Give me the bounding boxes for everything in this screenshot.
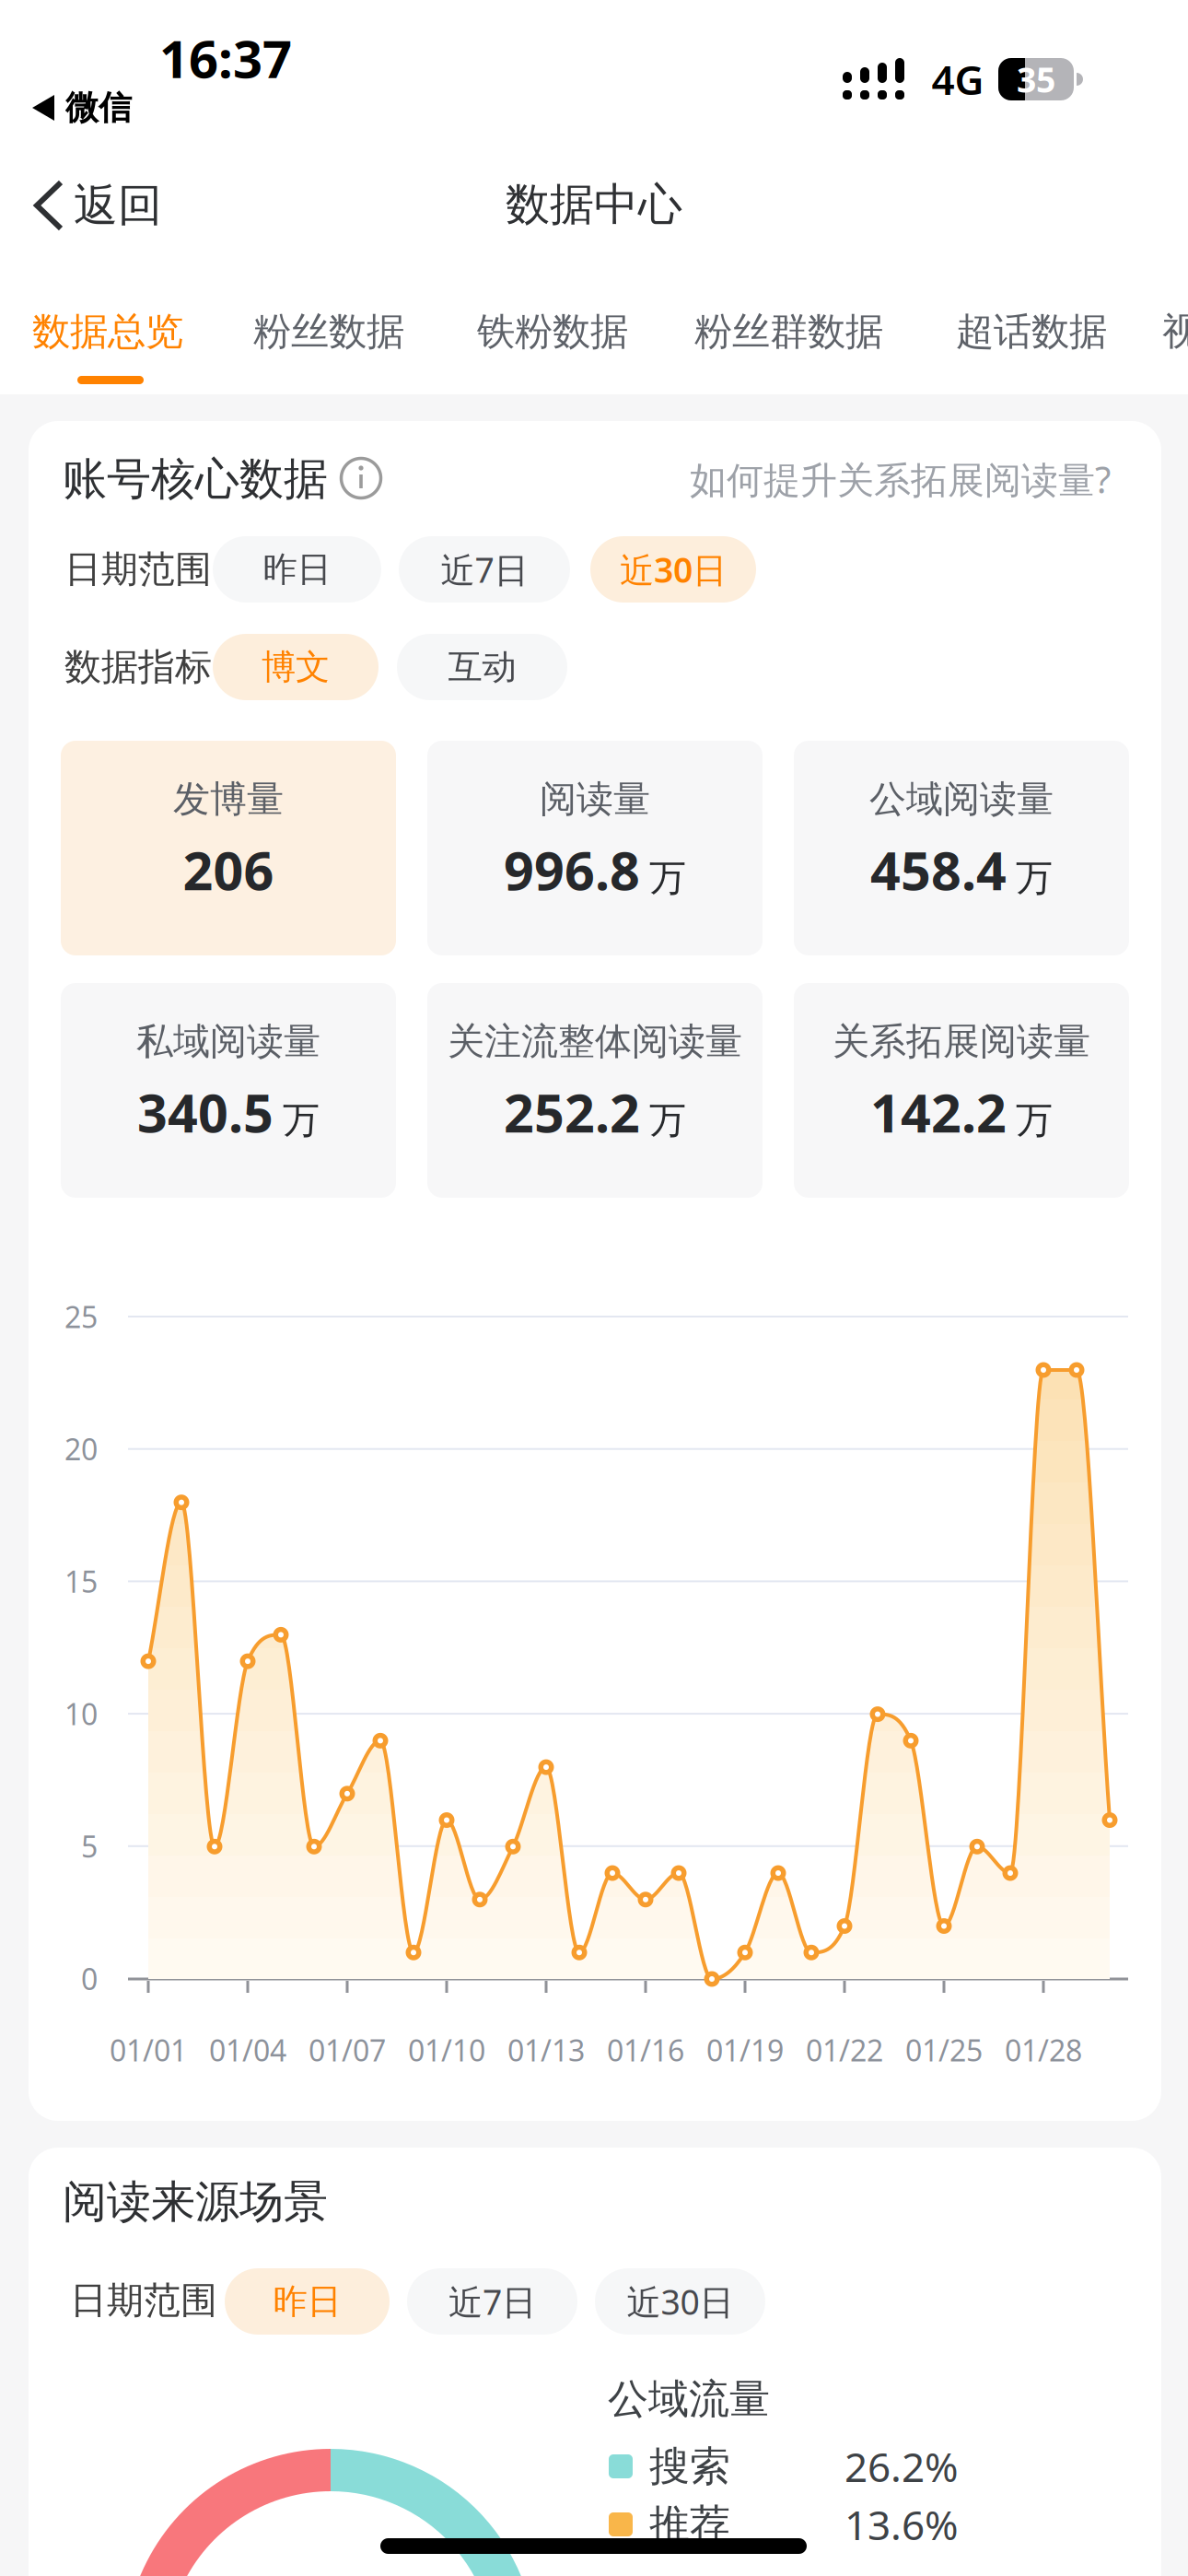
staticText: 01/10	[408, 2030, 485, 2070]
staticText: 视频数据	[1162, 308, 1188, 355]
staticText: 万	[1016, 1098, 1053, 1143]
button[interactable]: 昨日	[0, 0, 169, 66]
staticText: 10	[64, 1694, 98, 1733]
button[interactable]: 关注流整体阅读量	[0, 0, 335, 215]
staticText: 万	[1016, 855, 1053, 901]
staticText: 如何提升关系拓展阅读量?	[690, 455, 1111, 503]
button[interactable]: 私域阅读量	[0, 0, 335, 215]
staticText: 阅读量	[540, 777, 650, 822]
staticText: 252.2	[504, 1077, 640, 1147]
staticText: 发博量	[173, 777, 284, 822]
staticText: 日期范围	[70, 2278, 217, 2323]
button[interactable]: 昨日	[0, 0, 165, 66]
staticText: 数据指标	[64, 644, 212, 690]
staticText: 铁粉数据	[477, 308, 628, 355]
staticText: 公域流量	[608, 2374, 770, 2424]
staticText: 340.5	[137, 1077, 274, 1147]
staticText: 4G	[932, 52, 984, 106]
staticText: 数据总览	[32, 308, 183, 355]
staticText: 近30日	[627, 2279, 734, 2324]
button[interactable]: 视频数据	[0, 0, 164, 59]
staticText: 日期范围	[64, 547, 212, 592]
staticText: 206	[183, 835, 274, 905]
staticText: 昨日	[263, 548, 331, 591]
button[interactable]: 博文	[0, 0, 166, 66]
staticText: 推荐	[649, 2500, 730, 2549]
staticText: 万	[649, 1098, 686, 1143]
staticText: 20	[64, 1429, 98, 1469]
staticText: 142.2	[870, 1077, 1007, 1147]
staticText: 26.2%	[844, 2439, 959, 2493]
button[interactable]: 粉丝数据	[0, 0, 164, 59]
staticText: 返回	[74, 178, 162, 233]
staticText: 01/01	[110, 2030, 187, 2070]
staticText: 万	[283, 1098, 320, 1143]
staticText: 昨日	[273, 2280, 341, 2323]
staticText: 01/16	[607, 2030, 684, 2070]
staticText: 粉丝群数据	[694, 308, 883, 355]
staticText: 25	[64, 1297, 98, 1336]
staticText: 近30日	[620, 547, 727, 592]
staticText: 阅读来源场景	[63, 2175, 328, 2229]
staticText: 互动	[448, 646, 516, 688]
staticText: 01/07	[309, 2030, 386, 2070]
button[interactable]: 关系拓展阅读量	[0, 0, 335, 215]
staticText: 超话数据	[956, 308, 1107, 355]
button[interactable]: 铁粉数据	[0, 0, 164, 59]
staticText: 账号核心数据	[63, 452, 328, 506]
button[interactable]: 返回	[0, 0, 193, 57]
button[interactable]: 近30日	[0, 0, 166, 66]
staticText: 15	[64, 1562, 98, 1601]
staticText: 万	[649, 855, 686, 901]
button[interactable]: 近7日	[0, 0, 171, 66]
button[interactable]: 发博量	[0, 0, 335, 215]
staticText: 搜索	[649, 2441, 730, 2491]
staticText: 01/25	[905, 2030, 983, 2070]
staticText: 博文	[262, 646, 330, 688]
button[interactable]: 粉丝群数据	[0, 0, 204, 59]
staticText: 01/19	[706, 2030, 784, 2070]
staticText: 微信	[65, 87, 132, 128]
staticText: 私域阅读量	[136, 1019, 320, 1064]
staticText: 35	[1017, 56, 1055, 102]
staticText: 01/04	[209, 2030, 286, 2070]
staticText: 近7日	[448, 2279, 536, 2324]
button[interactable]: 超话数据	[0, 0, 164, 59]
button[interactable]: 阅读量	[0, 0, 335, 215]
staticText: 关系拓展阅读量	[833, 1019, 1090, 1064]
staticText: 粉丝数据	[253, 308, 404, 355]
staticText: 13.6%	[844, 2498, 959, 2551]
staticText: 458.4	[870, 835, 1007, 905]
staticText: 996.8	[504, 835, 640, 905]
button[interactable]: 近30日	[0, 0, 170, 66]
button[interactable]: 如何提升关系拓展阅读量?	[0, 0, 460, 44]
staticText: 公域阅读量	[869, 777, 1054, 822]
staticText: 关注流整体阅读量	[448, 1019, 742, 1064]
staticText: 01/13	[507, 2030, 585, 2070]
staticText: 近7日	[441, 547, 528, 592]
staticText: 0	[81, 1959, 98, 1998]
button[interactable]: 互动	[0, 0, 170, 66]
button[interactable]: 公域阅读量	[0, 0, 335, 215]
staticText: 16:37	[159, 24, 292, 92]
staticText: 5	[81, 1827, 98, 1866]
staticText: 01/28	[1005, 2030, 1082, 2070]
staticText: 01/22	[806, 2030, 883, 2070]
staticText: 数据中心	[506, 177, 682, 232]
button[interactable]: 近7日	[0, 0, 170, 66]
